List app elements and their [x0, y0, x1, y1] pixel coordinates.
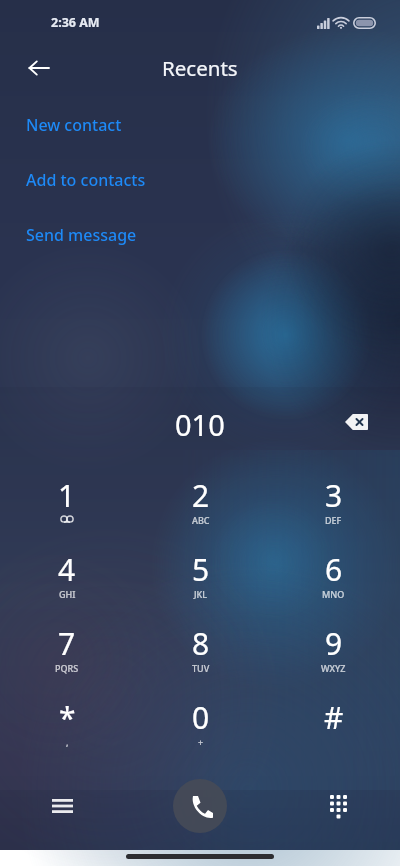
staticText: 7: [58, 623, 76, 664]
button[interactable]: 3: [267, 465, 400, 539]
button[interactable]: New contact: [26, 97, 400, 152]
staticText: 4: [58, 549, 76, 590]
staticText: 0: [192, 697, 210, 738]
button[interactable]: 9: [267, 613, 400, 687]
staticText: Recents: [162, 54, 238, 82]
staticText: New contact: [26, 114, 122, 136]
staticText: TUV: [192, 662, 210, 674]
button[interactable]: Menu: [40, 784, 84, 828]
button[interactable]: 8: [134, 613, 267, 687]
button[interactable]: Backspace: [334, 400, 378, 444]
button[interactable]: 0: [134, 687, 267, 761]
staticText: 2:36 AM: [51, 14, 100, 31]
staticText: 6: [325, 549, 343, 590]
button[interactable]: Back: [16, 45, 62, 91]
staticText: 8: [192, 623, 210, 664]
staticText: DEF: [325, 514, 342, 526]
staticText: MNO: [322, 588, 345, 600]
staticText: 5: [192, 549, 210, 590]
button[interactable]: Add to contacts: [26, 152, 400, 207]
staticText: +: [198, 736, 204, 748]
staticText: 3: [325, 475, 343, 516]
staticText: PQRS: [55, 662, 79, 674]
button[interactable]: *: [0, 687, 134, 761]
button[interactable]: #: [267, 687, 400, 761]
staticText: JKL: [194, 588, 208, 600]
button[interactable]: 4: [0, 539, 134, 613]
button[interactable]: 1: [0, 465, 134, 539]
button[interactable]: Dialpad: [316, 784, 360, 828]
staticText: 1: [58, 475, 76, 516]
staticText: #: [324, 697, 344, 738]
staticText: 9: [325, 623, 343, 664]
staticText: *: [59, 697, 76, 738]
staticText: Add to contacts: [26, 169, 146, 191]
staticText: GHI: [59, 588, 76, 600]
button[interactable]: Send message: [26, 207, 400, 262]
staticText: WXYZ: [321, 662, 346, 674]
button[interactable]: Call: [173, 779, 227, 833]
staticText: Send message: [26, 224, 137, 246]
button[interactable]: 5: [134, 539, 267, 613]
staticText: ABC: [192, 514, 210, 526]
button[interactable]: 6: [267, 539, 400, 613]
staticText: ,: [66, 736, 69, 748]
staticText: 2: [192, 475, 210, 516]
button[interactable]: 2: [134, 465, 267, 539]
staticText: 010: [175, 405, 225, 444]
button[interactable]: 7: [0, 613, 134, 687]
